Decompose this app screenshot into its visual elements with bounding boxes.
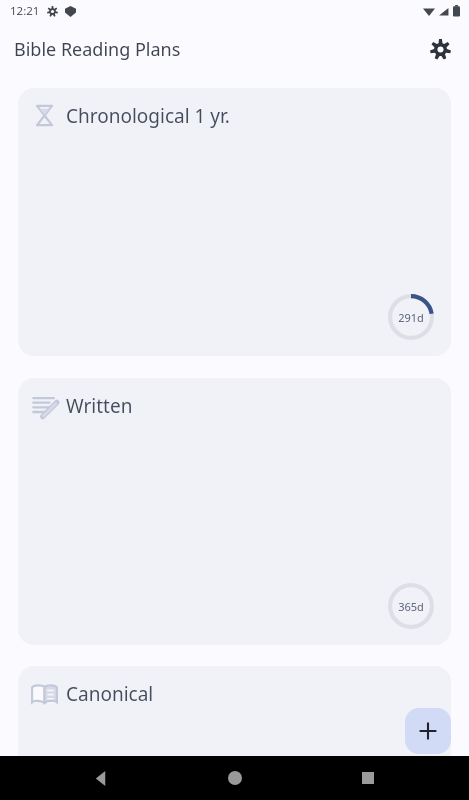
staticText: Written [66,393,133,419]
button[interactable]: Home [168,756,301,800]
button[interactable]: Back [35,756,168,800]
button[interactable]: Add reading plan [405,708,451,754]
button[interactable]: Written [18,378,451,645]
button[interactable]: Recent apps [301,756,434,800]
staticText: 291d [398,310,424,325]
staticText: 12:21 [10,3,40,19]
staticText: Bible Reading Plans [14,37,181,62]
staticText: Canonical [66,681,154,707]
staticText: 365d [398,599,424,614]
button[interactable]: Canonical [18,666,451,778]
button[interactable]: Settings [421,30,459,68]
button[interactable]: Chronological 1 yr. [18,88,451,356]
staticText: Chronological 1 yr. [66,103,230,129]
